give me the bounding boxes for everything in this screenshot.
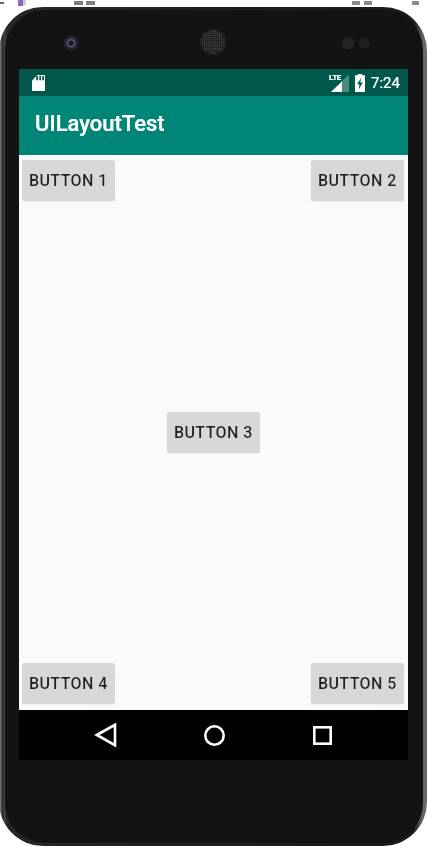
button[interactable]: BUTTON 1 xyxy=(22,160,115,201)
staticText: BUTTON 2 xyxy=(318,171,397,190)
staticText: UILayoutTest xyxy=(35,111,165,137)
staticText: LTE xyxy=(329,73,341,82)
button[interactable]: Recent apps xyxy=(298,711,346,759)
staticText: 7:24 xyxy=(371,74,400,92)
button[interactable]: BUTTON 3 xyxy=(167,412,260,453)
button[interactable]: BUTTON 4 xyxy=(22,663,115,704)
staticText: BUTTON 3 xyxy=(174,423,253,442)
button[interactable]: BUTTON 2 xyxy=(311,160,404,201)
button[interactable]: Home xyxy=(190,711,238,759)
staticText: BUTTON 1 xyxy=(29,171,108,190)
staticText: BUTTON 5 xyxy=(318,674,397,693)
staticText: BUTTON 4 xyxy=(29,674,108,693)
button[interactable]: BUTTON 5 xyxy=(311,663,404,704)
button[interactable]: Back xyxy=(82,711,130,759)
